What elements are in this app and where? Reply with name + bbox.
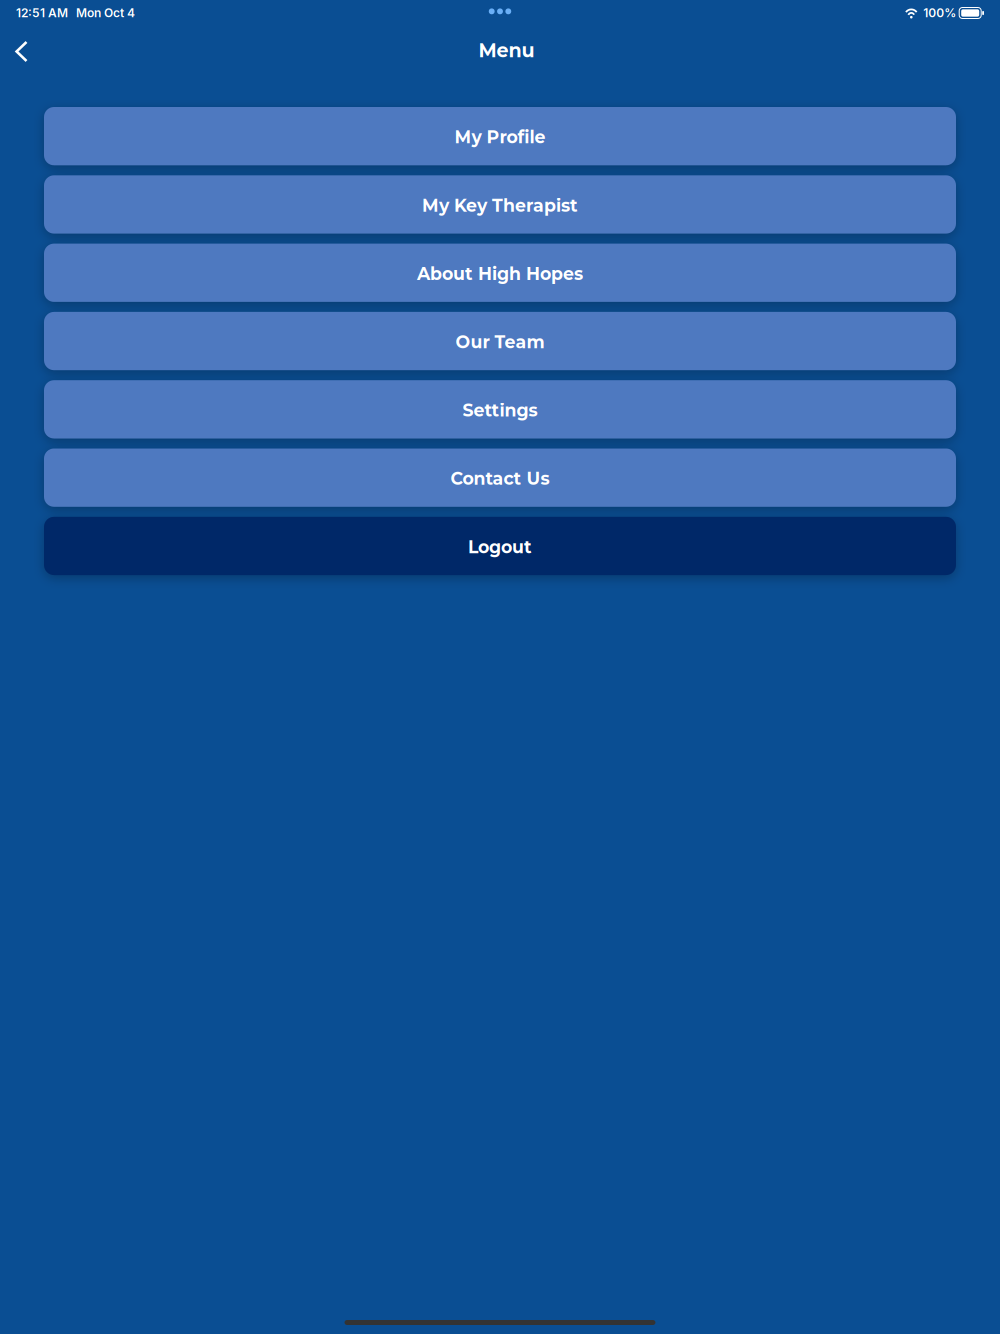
staticText: My Key Therapist bbox=[422, 195, 578, 216]
staticText: Mon Oct 4 bbox=[76, 6, 135, 20]
staticText: 100% bbox=[923, 6, 956, 20]
button[interactable]: My Profile bbox=[44, 107, 956, 165]
staticText: Contact Us bbox=[450, 468, 549, 489]
button[interactable]: Settings bbox=[44, 380, 956, 438]
button[interactable]: About High Hopes bbox=[44, 244, 956, 302]
staticText: About High Hopes bbox=[417, 263, 583, 284]
button[interactable]: Back bbox=[0, 30, 38, 70]
staticText: Settings bbox=[462, 400, 537, 421]
staticText: Our Team bbox=[455, 331, 544, 353]
staticText: Logout bbox=[468, 536, 532, 557]
button[interactable]: Our Team bbox=[44, 312, 956, 370]
staticText: Menu bbox=[478, 39, 534, 62]
button[interactable]: Logout bbox=[44, 517, 956, 575]
button[interactable]: Contact Us bbox=[44, 448, 956, 507]
staticText: My Profile bbox=[454, 127, 545, 148]
button[interactable]: My Key Therapist bbox=[44, 175, 956, 234]
staticText: 12:51 AM bbox=[16, 6, 68, 20]
